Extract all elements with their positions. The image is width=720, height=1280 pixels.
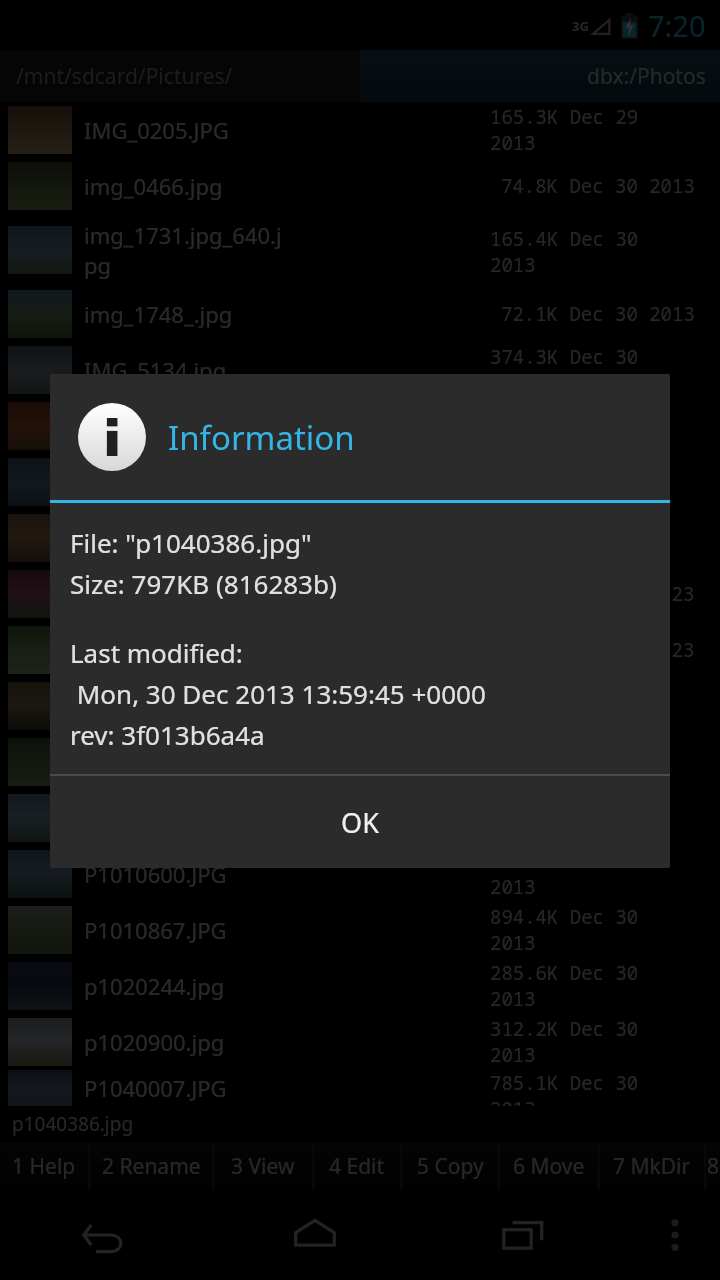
button[interactable]: p1020244.jpg: [0, 958, 720, 1014]
staticText: 1 Help: [12, 1152, 76, 1181]
staticText: 165.3K Dec 29 2013: [490, 104, 695, 156]
staticText: pg: [84, 250, 112, 280]
staticText: P1040007.JPG: [84, 1073, 227, 1103]
staticText: 72.1K Dec 30 2013: [501, 301, 695, 327]
button[interactable]: IMG_5632.JPG: [0, 622, 720, 678]
staticText: 3G: [572, 17, 589, 35]
staticText: IMG_5632.JPG: [84, 635, 229, 665]
staticText: P1010600.JPG: [84, 859, 227, 889]
button[interactable]: 6 Move: [500, 1142, 598, 1190]
button[interactable]: P1010500.JPG: [0, 790, 720, 846]
staticText: 797.0K Dec 30 2013: [490, 736, 695, 788]
staticText: 562.3K Dec 30 2013: [490, 792, 695, 844]
button[interactable]: img_1748_.jpg: [0, 286, 720, 342]
staticText: Mon, 30 Dec 2013 13:59:45 +0000: [70, 676, 486, 711]
staticText: p1020900.jpg: [84, 1027, 225, 1057]
staticText: P1010867.JPG: [84, 915, 227, 945]
staticText: IMG_5633.JPG: [84, 691, 229, 721]
staticText: 74.8K Dec 30 2013: [501, 173, 695, 199]
staticText: 8: [707, 1152, 720, 1181]
staticText: p1040386.jpg: [84, 747, 225, 777]
staticText: 298.2K Dec 30 2013: [490, 456, 695, 508]
button[interactable]: Home: [210, 1190, 420, 1280]
staticText: File: "p1040386.jpg": [70, 525, 312, 560]
button[interactable]: 1 Help: [0, 1142, 88, 1190]
staticText: IMG_5630.JPG: [84, 523, 229, 553]
staticText: 2 Rename: [102, 1152, 201, 1181]
staticText: 165.4K Dec 30 2013: [490, 226, 695, 278]
button[interactable]: /mnt/sdcard/Pictures/: [0, 50, 360, 102]
button[interactable]: p1040386.jpg: [0, 734, 720, 790]
staticText: 785.1K Dec 30 2013: [490, 1070, 695, 1106]
staticText: 374.3K Dec 30 2013: [490, 344, 695, 396]
button[interactable]: 4 Edit: [314, 1142, 400, 1190]
button[interactable]: img_0466.jpg: [0, 158, 720, 214]
button[interactable]: More options: [630, 1190, 720, 1280]
staticText: img_1731.jpg_640.j: [84, 220, 282, 250]
staticText: Last modified:: [70, 635, 243, 670]
staticText: 3 View: [231, 1152, 295, 1181]
staticText: IMG_0205.JPG: [84, 115, 229, 145]
staticText: Size: 797KB (816283b): [70, 566, 337, 601]
staticText: 210.5K Dec 30 23: [512, 581, 695, 607]
staticText: 894.4K Dec 30 2013: [490, 904, 695, 956]
button[interactable]: 5 Copy: [402, 1142, 498, 1190]
staticText: /mnt/sdcard/Pictures/: [16, 62, 233, 91]
staticText: 5 Copy: [417, 1152, 484, 1181]
staticText: Information: [168, 415, 355, 460]
staticText: IMG_5134.jpg: [84, 355, 227, 385]
button[interactable]: IMG_5134.jpg: [0, 342, 720, 398]
button[interactable]: IMG_0205.JPG: [0, 102, 720, 158]
button[interactable]: p1020900.jpg: [0, 1014, 720, 1070]
staticText: p1020244.jpg: [84, 971, 225, 1001]
button[interactable]: OK: [50, 776, 670, 868]
button[interactable]: P1010867.JPG: [0, 902, 720, 958]
staticText: IMG_5628.JPG: [84, 411, 229, 441]
staticText: 285.6K Dec 30 2013: [490, 960, 695, 1012]
staticText: dbx:/Photos: [587, 62, 706, 91]
staticText: 312.2K Dec 30 2013: [490, 1016, 695, 1068]
button[interactable]: P1040007.JPG: [0, 1070, 720, 1106]
staticText: 443.8K Dec 30 2013: [490, 848, 695, 900]
button[interactable]: 2 Rename: [90, 1142, 212, 1190]
button[interactable]: img_1731.jpg_640.j: [0, 214, 720, 286]
staticText: 7:20: [648, 6, 706, 45]
button[interactable]: 7 MkDir: [600, 1142, 704, 1190]
staticText: OK: [341, 804, 379, 841]
staticText: 7 MkDir: [613, 1152, 691, 1181]
staticText: 6 Move: [513, 1152, 585, 1181]
staticText: img_0466.jpg: [84, 171, 223, 201]
staticText: IMG_5631.JPG: [84, 579, 229, 609]
button[interactable]: 3 View: [214, 1142, 312, 1190]
button[interactable]: 8: [706, 1142, 720, 1190]
button[interactable]: IMG_5631.JPG: [0, 566, 720, 622]
staticText: IMG_5629.JPG: [84, 467, 229, 497]
button[interactable]: IMG_5628.JPG: [0, 398, 720, 454]
staticText: 312.1K Dec 30 2013: [490, 400, 695, 452]
staticText: 199.4K Dec 30 2013: [490, 680, 695, 732]
button[interactable]: P1010600.JPG: [0, 846, 720, 902]
button[interactable]: IMG_5633.JPG: [0, 678, 720, 734]
button[interactable]: Recent apps: [420, 1190, 630, 1280]
button[interactable]: Back: [0, 1190, 210, 1280]
staticText: 187.9K Dec 30 23: [512, 637, 695, 663]
button[interactable]: IMG_5630.JPG: [0, 510, 720, 566]
button[interactable]: IMG_5629.JPG: [0, 454, 720, 510]
staticText: 254.0K Dec 30 2013: [490, 512, 695, 564]
staticText: rev: 3f013b6a4a: [70, 717, 265, 752]
staticText: 4 Edit: [329, 1152, 385, 1181]
button[interactable]: dbx:/Photos: [360, 50, 720, 102]
staticText: p1040386.jpg: [12, 1111, 134, 1137]
staticText: img_1748_.jpg: [84, 299, 233, 329]
